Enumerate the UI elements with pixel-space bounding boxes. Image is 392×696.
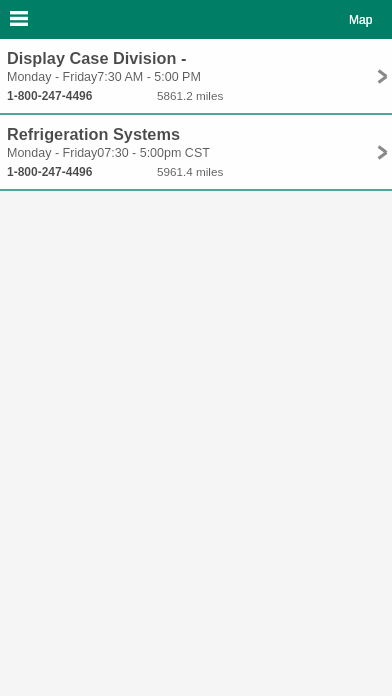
button[interactable]: Display Case Division - — [0, 39, 392, 113]
staticText: 1-800-247-4496 — [7, 165, 93, 178]
staticText: Refrigeration Systems — [7, 125, 180, 143]
staticText: Map — [349, 13, 373, 26]
staticText: 5861.2 miles — [157, 89, 224, 102]
button[interactable]: Refrigeration Systems — [0, 115, 392, 189]
staticText: Monday - Friday07:30 - 5:00pm CST — [7, 146, 210, 160]
staticText: 1-800-247-4496 — [7, 89, 93, 102]
staticText: Monday - Friday7:30 AM - 5:00 PM — [7, 70, 201, 84]
button[interactable]: Open navigation menu — [2, 1, 36, 35]
button[interactable]: Map — [340, 0, 382, 39]
staticText: 5961.4 miles — [157, 165, 224, 178]
staticText: Display Case Division - — [7, 49, 187, 67]
